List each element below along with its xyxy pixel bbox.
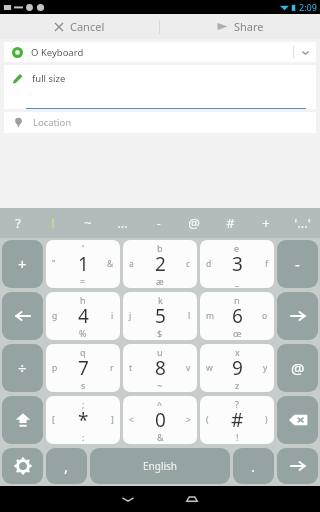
staticText: ? [235, 398, 239, 410]
button[interactable]: Backspace [277, 396, 318, 444]
button[interactable]: ~ [70, 208, 105, 238]
button[interactable]: - [277, 240, 318, 288]
button[interactable]: + [248, 208, 284, 238]
staticText: 3 [232, 251, 243, 277]
staticText: @ [291, 358, 305, 378]
staticText: % [79, 327, 87, 339]
button[interactable]: . [233, 448, 274, 484]
staticText: " [52, 258, 56, 270]
staticText: æ [156, 275, 164, 287]
button[interactable]: k [123, 292, 197, 340]
staticText: o [262, 310, 268, 322]
staticText: 7 [78, 355, 89, 381]
button[interactable]: '...' [284, 208, 320, 238]
button[interactable]: # [212, 208, 248, 238]
staticText: 2:09 [299, 1, 317, 13]
staticText: ( [206, 414, 209, 426]
staticText: * [78, 407, 89, 433]
staticText: # [231, 407, 244, 433]
staticText: @ [188, 214, 200, 232]
staticText: t [129, 362, 133, 374]
staticText: : [82, 431, 85, 443]
button[interactable]: Shift [2, 396, 43, 444]
button[interactable]: - [140, 208, 176, 238]
staticText: k [158, 294, 163, 306]
staticText: x [235, 346, 240, 358]
staticText: ! [236, 431, 239, 443]
staticText: > [186, 414, 191, 426]
button[interactable]: Settings [2, 448, 43, 484]
button[interactable]: Left [2, 292, 43, 340]
button[interactable]: @ [176, 208, 212, 238]
button[interactable]: O Keyboard [4, 42, 316, 62]
button[interactable]: + [2, 240, 43, 288]
button[interactable]: , [46, 448, 87, 484]
button[interactable]: Share [160, 14, 320, 39]
button[interactable]: English [90, 448, 230, 484]
staticText: < [129, 414, 134, 426]
staticText: - [156, 214, 161, 232]
staticText: œ [233, 327, 242, 339]
button[interactable]: Home [172, 486, 212, 512]
staticText: Cancel [70, 19, 105, 34]
button[interactable]: e [200, 240, 274, 288]
staticText: 0 [155, 407, 166, 433]
button[interactable]: q [46, 344, 120, 392]
staticText: h [80, 294, 86, 306]
button[interactable]: b [123, 240, 197, 288]
staticText: ) [265, 414, 268, 426]
staticText: # [226, 214, 235, 232]
button[interactable]: Enter [277, 448, 318, 484]
staticText: - [295, 254, 300, 274]
staticText: 8 [155, 355, 166, 381]
button[interactable]: Cancel [0, 14, 159, 39]
button[interactable]: u [123, 344, 197, 392]
button[interactable]: Right [277, 292, 318, 340]
staticText: _ [235, 275, 239, 287]
staticText: + [262, 214, 270, 232]
staticText: g [52, 310, 58, 322]
staticText: b [157, 242, 163, 254]
staticText: s [81, 379, 86, 391]
button[interactable]: ' [46, 240, 120, 288]
button[interactable]: n [200, 292, 274, 340]
staticText: ^ [157, 398, 163, 410]
staticText: Share [234, 19, 264, 34]
button[interactable]: @ [277, 344, 318, 392]
button[interactable]: ^ [123, 396, 197, 444]
button[interactable]: full size [4, 65, 316, 91]
staticText: [ [52, 414, 55, 426]
staticText: ; [82, 398, 85, 410]
button[interactable]: Expand account [294, 42, 316, 62]
button[interactable]: Location [4, 112, 316, 133]
staticText: . [251, 456, 256, 476]
button[interactable]: ! [35, 208, 70, 238]
staticText: w [206, 362, 213, 374]
staticText: f [265, 258, 268, 270]
staticText: 9 [232, 355, 243, 381]
button[interactable]: ... [105, 208, 140, 238]
button[interactable]: ? [0, 208, 35, 238]
button[interactable]: ÷ [2, 344, 43, 392]
button[interactable]: ? [200, 396, 274, 444]
button[interactable]: ; [46, 396, 120, 444]
staticText: y [263, 362, 268, 374]
staticText: m [206, 310, 214, 322]
staticText: ~ [157, 379, 163, 391]
staticText: c [186, 258, 191, 270]
staticText: a [129, 258, 134, 270]
staticText: ~ [84, 214, 92, 232]
staticText: & [107, 258, 114, 270]
button[interactable]: h [46, 292, 120, 340]
staticText: ? [15, 214, 21, 232]
staticText: + [18, 254, 27, 274]
staticText: q [80, 346, 86, 358]
button[interactable]: x [200, 344, 274, 392]
staticText: z [235, 379, 240, 391]
staticText: r [110, 362, 114, 374]
staticText: $ [157, 327, 163, 339]
staticText: p [52, 362, 58, 374]
staticText: ] [111, 414, 114, 426]
staticText: e [234, 242, 240, 254]
button[interactable]: Back [108, 486, 148, 512]
